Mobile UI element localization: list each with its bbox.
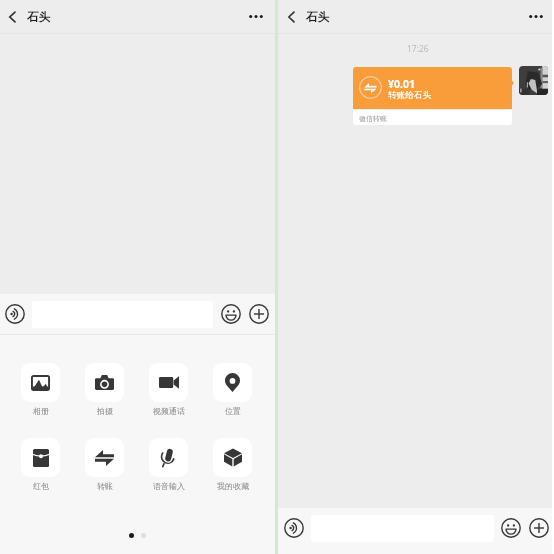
button[interactable]: More functions xyxy=(529,518,549,538)
button[interactable]: Emoji xyxy=(221,304,241,324)
button[interactable]: Back xyxy=(282,0,300,34)
button[interactable]: More options xyxy=(236,0,275,34)
staticText: 红包 xyxy=(33,481,49,491)
button[interactable] xyxy=(213,363,252,402)
button[interactable]: ¥0.01 xyxy=(353,67,512,109)
button[interactable] xyxy=(21,363,60,402)
staticText: 视频通话 xyxy=(153,406,185,416)
button[interactable] xyxy=(21,438,60,477)
button[interactable] xyxy=(149,363,188,402)
button[interactable]: Emoji xyxy=(501,518,521,538)
button[interactable] xyxy=(85,438,124,477)
staticText: 石头 xyxy=(27,10,50,24)
button[interactable]: Back xyxy=(3,0,21,34)
button[interactable]: Voice input xyxy=(284,518,304,538)
button[interactable]: Avatar xyxy=(519,66,548,95)
button[interactable]: More functions xyxy=(249,304,269,324)
button[interactable]: More options xyxy=(520,0,552,34)
staticText: 石头 xyxy=(306,10,329,24)
staticText: 转账 xyxy=(97,481,113,491)
staticText: 相册 xyxy=(33,406,49,416)
staticText: 转账给石头 xyxy=(388,90,432,101)
staticText: 拍摄 xyxy=(97,406,113,416)
staticText: 17:26 xyxy=(407,43,429,55)
staticText: 位置 xyxy=(225,406,241,416)
button[interactable] xyxy=(149,438,188,477)
staticText: 我的收藏 xyxy=(217,481,249,491)
button[interactable] xyxy=(85,363,124,402)
staticText: 语音输入 xyxy=(153,481,185,491)
staticText: 微信转账 xyxy=(359,114,387,123)
button[interactable]: Voice input xyxy=(5,304,25,324)
button[interactable] xyxy=(213,438,252,477)
staticText: ¥0.01 xyxy=(388,77,415,91)
